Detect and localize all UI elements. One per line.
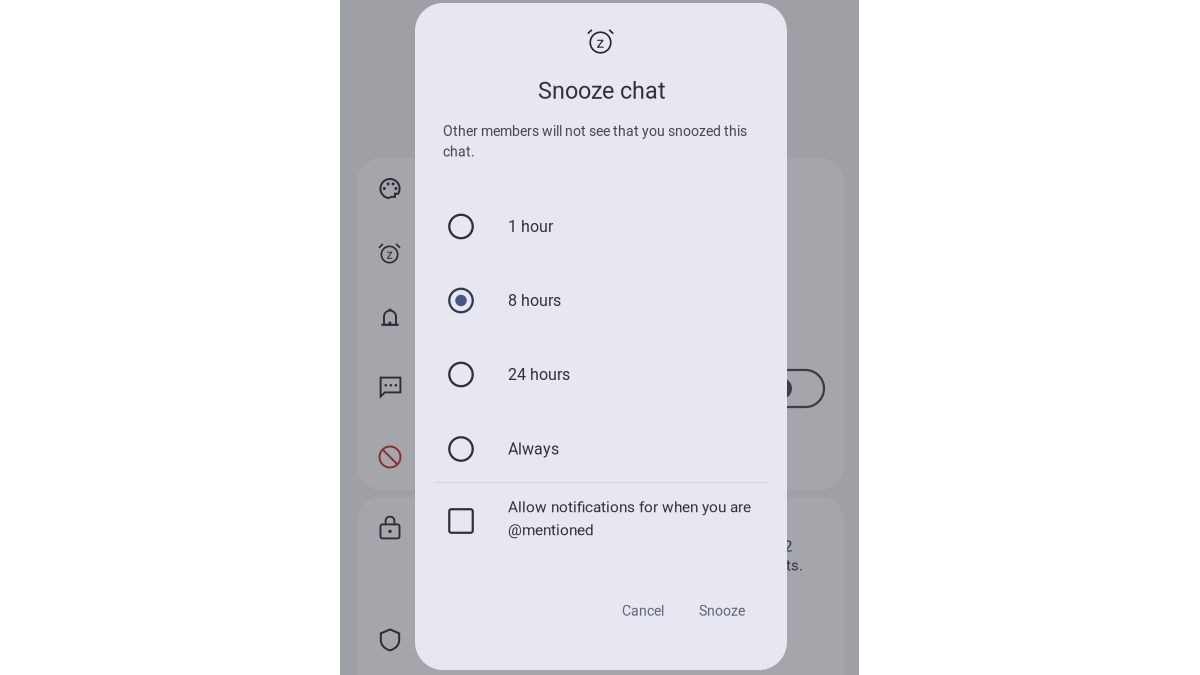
button[interactable]: Snooze — [690, 596, 754, 626]
button[interactable]: 24 hours — [415, 337, 786, 411]
staticText: Cancel — [622, 603, 664, 619]
staticText: Allow notifications for when you are — [508, 498, 751, 516]
staticText: 8 hours — [508, 291, 561, 310]
staticText: Always — [508, 440, 559, 458]
staticText: Snooze — [699, 603, 745, 619]
staticText: z — [386, 247, 392, 262]
button[interactable]: Allow notifications for when you are — [415, 498, 786, 560]
staticText: 1 hour — [508, 217, 553, 236]
button[interactable]: 1 hour — [415, 189, 786, 263]
staticText: Other members will not see that you snoo… — [443, 123, 747, 139]
staticText: ats. — [778, 557, 803, 574]
staticText: chat. — [443, 143, 475, 160]
staticText: @mentioned — [508, 521, 594, 539]
staticText: 2 — [784, 538, 792, 555]
staticText: Snooze chat — [538, 77, 666, 104]
staticText: 24 hours — [508, 365, 570, 384]
button[interactable]: Cancel — [612, 596, 674, 626]
staticText: z — [596, 33, 604, 51]
button[interactable]: Always — [415, 412, 786, 486]
button[interactable]: 8 hours — [415, 263, 786, 337]
